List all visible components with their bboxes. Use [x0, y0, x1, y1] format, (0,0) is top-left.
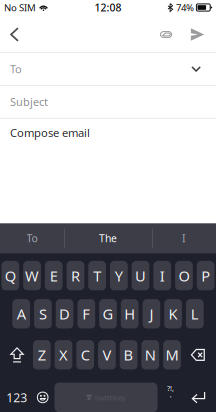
staticText: D [59, 304, 70, 324]
staticText: G [102, 304, 113, 324]
button[interactable]: Shift [1, 340, 33, 370]
button[interactable]: W [23, 261, 41, 290]
button[interactable]: A [12, 299, 30, 329]
button[interactable]: F [77, 299, 95, 329]
button[interactable]: Space [54, 383, 157, 412]
button[interactable]: B [120, 340, 137, 370]
staticText: P [201, 266, 210, 286]
button[interactable]: G [99, 299, 117, 329]
button[interactable]: E [45, 261, 63, 290]
staticText: SwiftKey [94, 392, 125, 403]
button[interactable]: I [153, 261, 171, 290]
button[interactable]: To [0, 53, 216, 85]
staticText: . [169, 388, 171, 400]
button[interactable]: Compose email [0, 119, 216, 153]
button[interactable]: Send [182, 21, 213, 48]
staticText: B [124, 345, 134, 365]
button[interactable]: V [98, 340, 116, 370]
staticText: T [93, 266, 101, 286]
button[interactable]: N [141, 340, 159, 370]
button[interactable]: Attach file [150, 21, 182, 48]
staticText: M [165, 345, 178, 365]
staticText: Subject [10, 94, 48, 109]
staticText: Compose email [10, 125, 90, 140]
staticText: S [39, 304, 47, 324]
button[interactable]: U [132, 261, 149, 290]
staticText: 123 [6, 389, 27, 406]
button[interactable]: M [163, 340, 181, 370]
button[interactable]: S [34, 299, 52, 329]
staticText: 74% [176, 1, 194, 14]
button[interactable]: P [197, 261, 214, 290]
staticText: 12:08 [94, 0, 121, 15]
button[interactable]: X [55, 340, 72, 370]
staticText: R [71, 266, 80, 286]
button[interactable]: I [152, 223, 216, 253]
staticText: ?!, [167, 383, 174, 393]
button[interactable]: Back [0, 21, 29, 48]
staticText: L [191, 304, 199, 324]
button[interactable]: O [175, 261, 193, 290]
button[interactable]: C [76, 340, 94, 370]
staticText: C [81, 345, 90, 365]
button[interactable]: L [186, 299, 204, 329]
button[interactable]: K [164, 299, 182, 329]
staticText: U [135, 266, 146, 286]
button[interactable]: 123 [2, 383, 31, 412]
button[interactable]: The [64, 223, 152, 253]
staticText: W [25, 266, 39, 286]
staticText: H [124, 304, 135, 324]
staticText: O [178, 266, 189, 286]
staticText: X [59, 345, 68, 365]
staticText: To [10, 62, 22, 76]
staticText: A [17, 304, 26, 324]
staticText: K [169, 304, 178, 324]
button[interactable]: H [121, 299, 139, 329]
staticText: V [102, 345, 111, 365]
staticText: E [50, 266, 58, 286]
staticText: J [149, 304, 153, 324]
staticText: Z [38, 345, 46, 365]
button[interactable]: Subject [0, 86, 216, 118]
staticText: The [99, 231, 117, 245]
staticText: N [145, 345, 156, 365]
button[interactable]: Q [1, 261, 19, 290]
staticText: No SIM [4, 1, 36, 14]
staticText: Y [115, 266, 123, 286]
staticText: I [182, 231, 186, 245]
button[interactable]: D [56, 299, 73, 329]
button[interactable]: Return [183, 383, 213, 412]
staticText: Q [5, 266, 16, 286]
staticText: I [160, 266, 165, 286]
button[interactable]: Delete [181, 340, 215, 370]
button[interactable]: Emoji [31, 383, 54, 412]
button[interactable]: Punctuation [157, 381, 183, 412]
button[interactable]: To [0, 223, 64, 253]
button[interactable]: Y [110, 261, 128, 290]
button[interactable]: Z [33, 340, 51, 370]
staticText: F [82, 304, 90, 324]
button[interactable]: R [67, 261, 84, 290]
button[interactable]: T [88, 261, 106, 290]
button[interactable]: J [143, 299, 160, 329]
staticText: To [26, 231, 37, 245]
